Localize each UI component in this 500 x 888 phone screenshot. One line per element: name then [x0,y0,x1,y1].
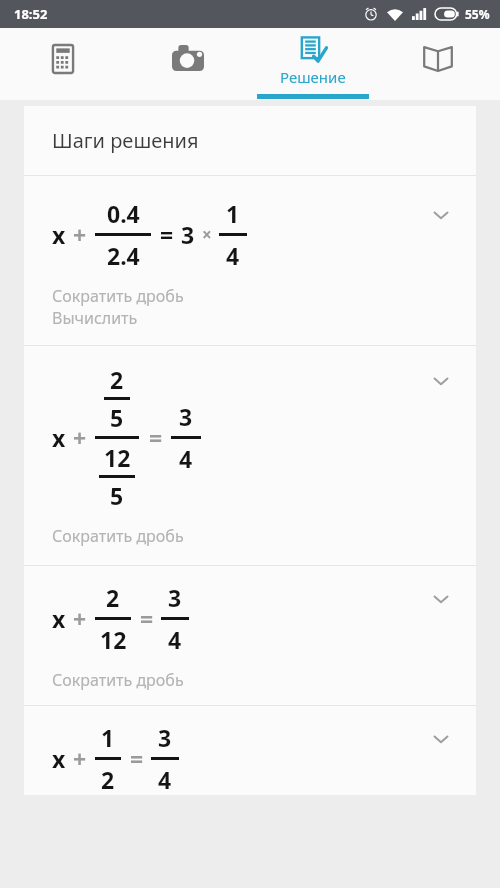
staticText: 5 [110,480,124,511]
button[interactable]: Решение [250,28,375,100]
staticText: × [202,223,212,246]
staticText: Сократить дробь [52,285,184,307]
staticText: = [140,603,154,634]
staticText: + [73,603,87,634]
staticText: 2.4 [107,240,140,271]
staticText: = [160,219,174,250]
staticText: x [52,219,66,250]
staticText: 3 [181,219,195,250]
staticText: Сократить дробь [52,669,184,691]
staticText: 3 [158,722,172,753]
staticText: 0.4 [107,198,140,229]
staticText: 4 [158,764,172,795]
button[interactable]: x [24,706,476,795]
staticText: 4 [179,443,193,474]
staticText: = [149,422,163,453]
button[interactable]: Expand step [428,368,454,394]
button[interactable]: Dictionary [375,28,500,100]
staticText: Вычислить [52,307,138,329]
staticText: 18:52 [14,5,48,23]
staticText: + [73,743,87,774]
staticText: Сократить дробь [52,525,184,547]
staticText: = [130,743,144,774]
staticText: 12 [104,442,131,473]
button[interactable]: x [24,176,476,345]
staticText: x [52,603,66,634]
button[interactable]: Expand step [428,202,454,228]
staticText: 2 [110,364,124,395]
button[interactable]: x [24,566,476,705]
staticText: 5 [110,402,124,433]
button[interactable]: Expand step [428,586,454,612]
staticText: 55% [465,6,490,22]
button[interactable]: Calculator [0,28,125,100]
staticText: + [73,422,87,453]
staticText: 4 [226,240,240,271]
button[interactable]: Camera [125,28,250,100]
staticText: 4 [168,624,182,655]
staticText: 1 [101,722,115,753]
staticText: 12 [100,624,127,655]
button[interactable]: Шаги решения [24,106,476,175]
staticText: Шаги решения [52,127,199,154]
button[interactable]: x [24,346,476,565]
staticText: x [52,743,66,774]
staticText: x [52,422,66,453]
staticText: 1 [226,198,240,229]
staticText: 2 [101,764,115,795]
staticText: 2 [106,582,120,613]
staticText: 3 [168,582,182,613]
staticText: Решение [280,67,346,87]
staticText: + [73,219,87,250]
staticText: 3 [179,401,193,432]
button[interactable]: Expand step [428,726,454,752]
